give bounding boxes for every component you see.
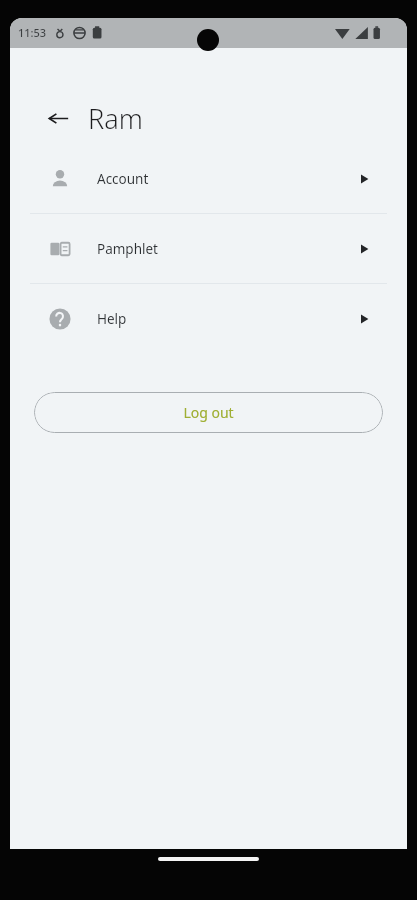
staticText: Log out	[183, 403, 234, 422]
button[interactable]: Pamphlet	[10, 214, 407, 283]
staticText: Help	[97, 310, 127, 328]
button[interactable]: Account	[10, 144, 407, 213]
staticText: Pamphlet	[97, 240, 158, 258]
staticText: Ram	[88, 100, 143, 137]
button[interactable]: Help	[10, 284, 407, 353]
staticText: 11:53	[18, 25, 47, 40]
button[interactable]: Back	[40, 100, 76, 136]
staticText: Account	[97, 170, 149, 188]
button[interactable]: Log out	[34, 392, 383, 433]
